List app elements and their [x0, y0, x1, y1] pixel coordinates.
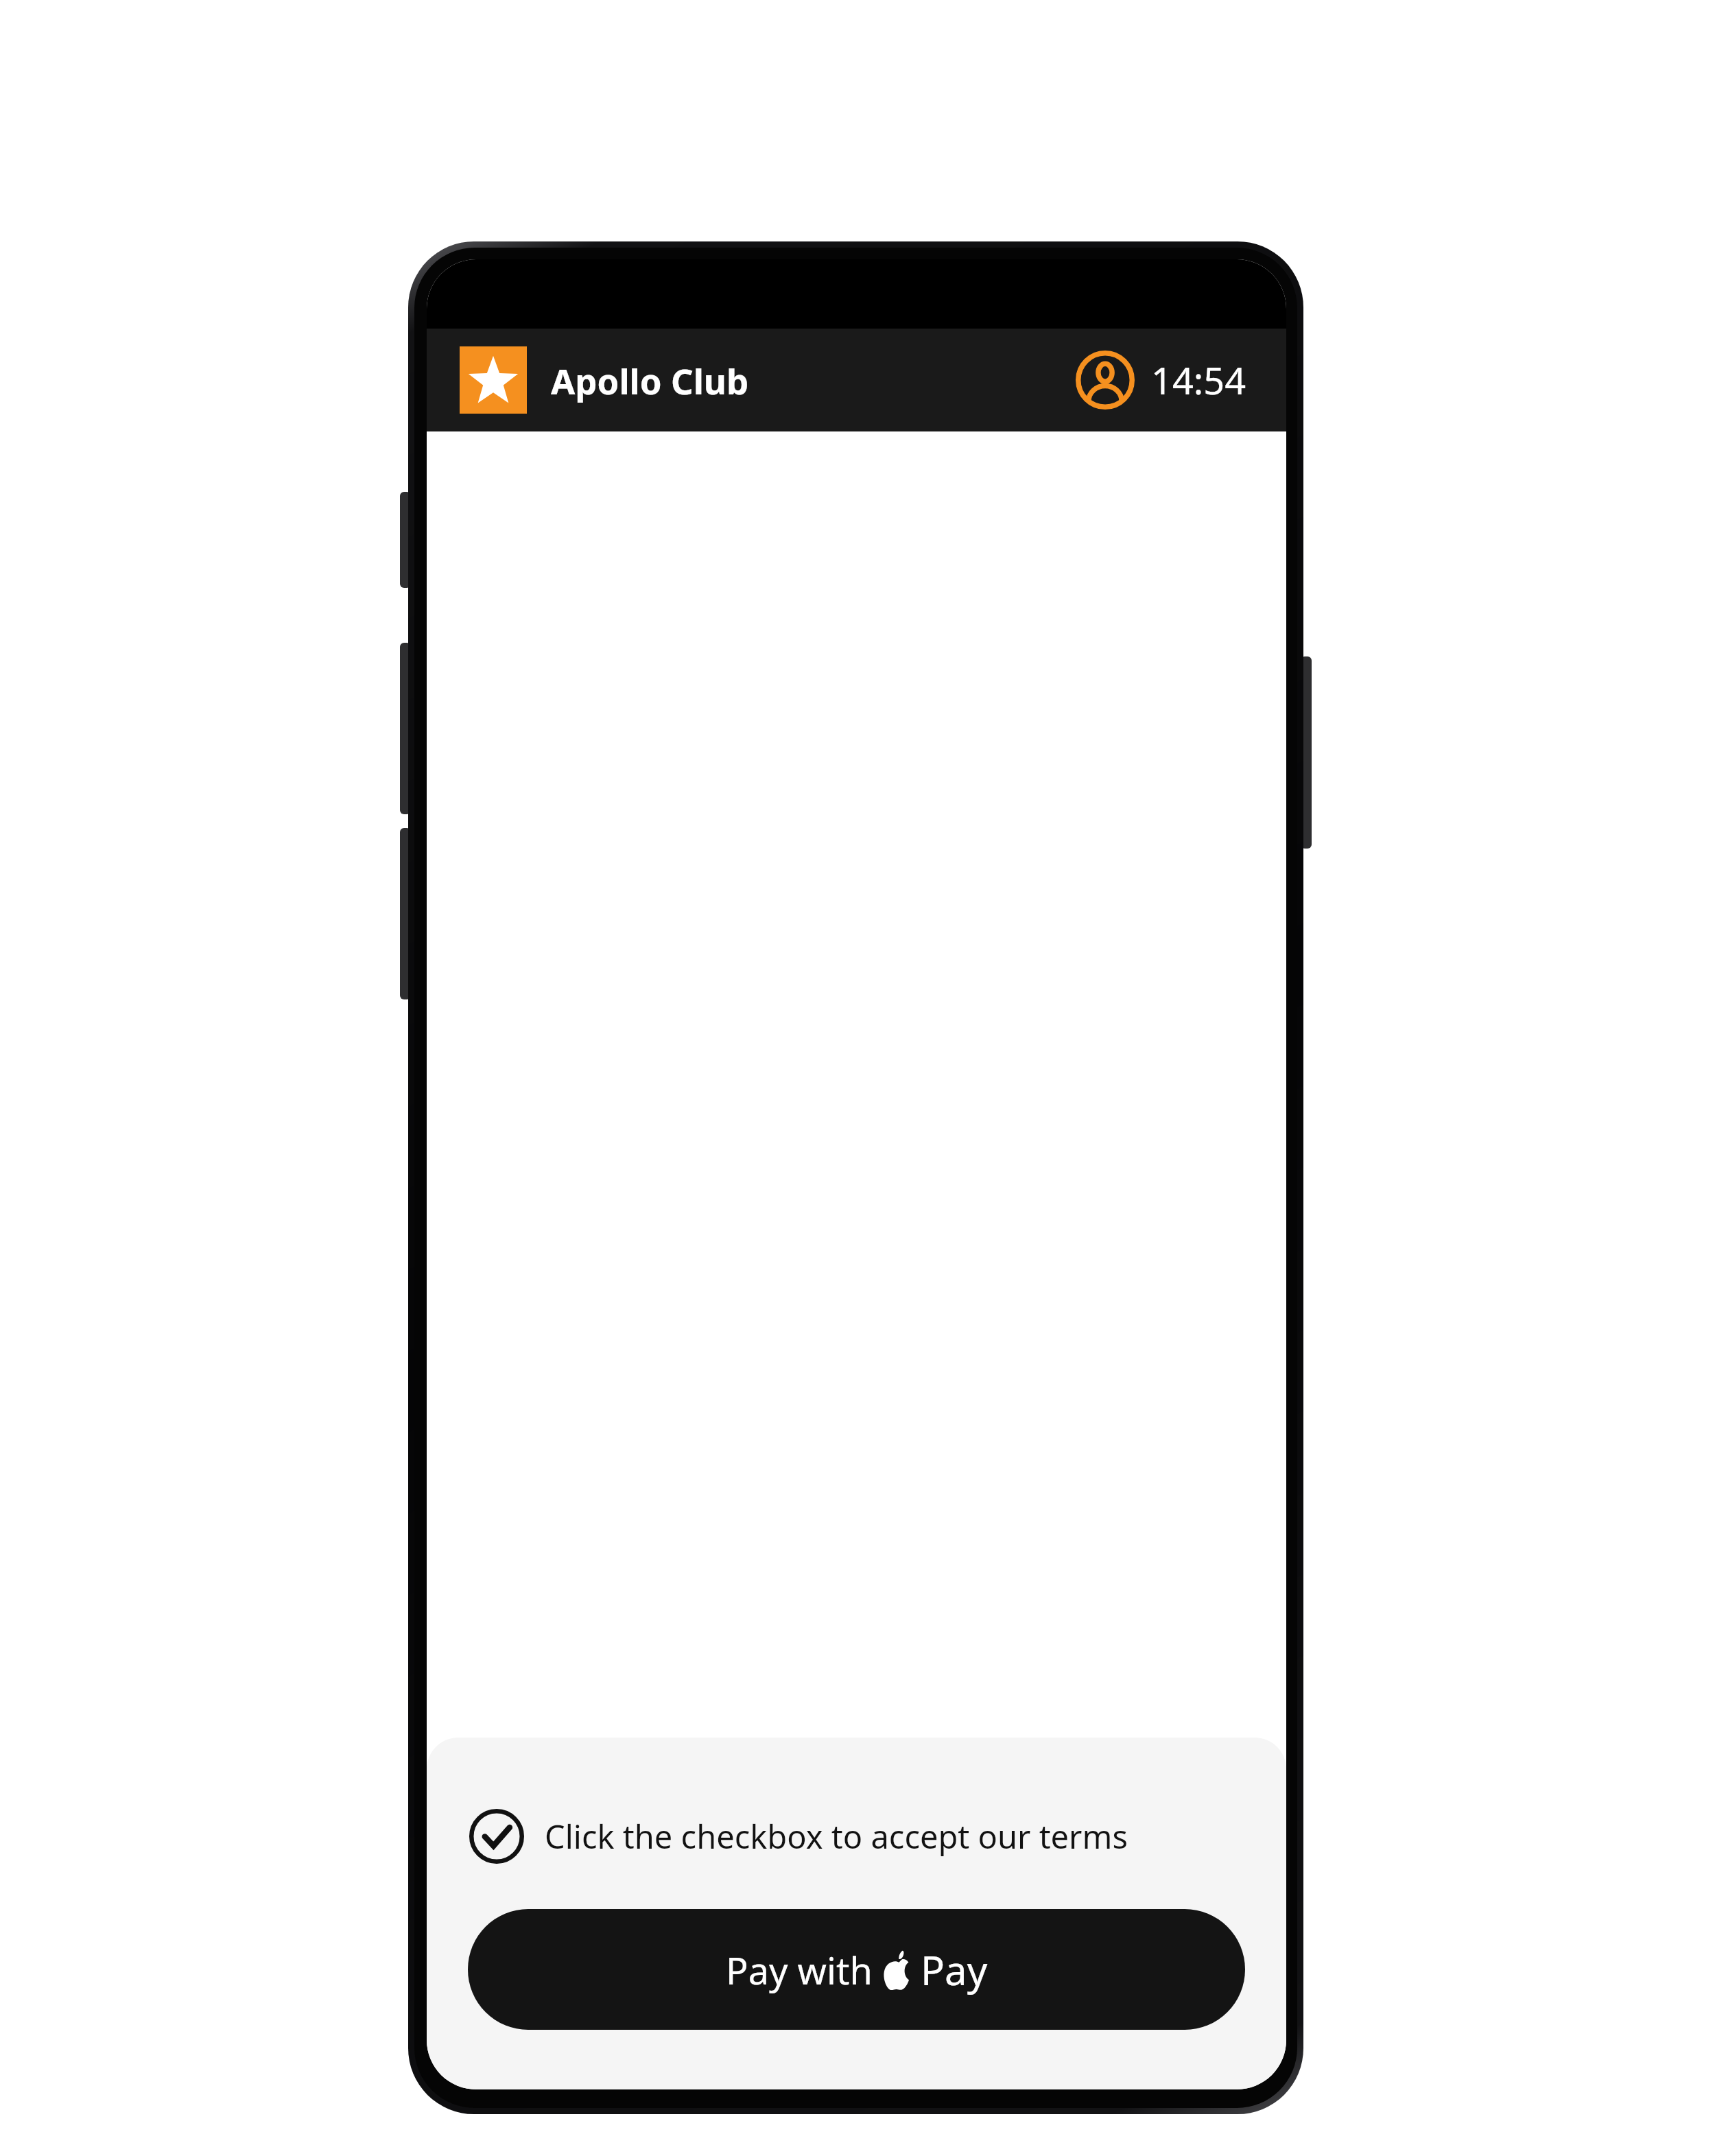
- button[interactable]: Pay with Apple Pay: [468, 1909, 1245, 2030]
- staticText: Pay with: [726, 1945, 882, 1995]
- staticText: Apollo Club: [551, 357, 749, 404]
- button[interactable]: Click the checkbox to accept our terms: [468, 1808, 1245, 1865]
- staticText: Click the checkbox to accept our terms: [545, 1814, 1128, 1858]
- button[interactable]: Account: [1067, 342, 1143, 418]
- button[interactable]: Apollo Club logo: [460, 346, 527, 414]
- staticText: Pay: [921, 1943, 988, 1997]
- staticText: 14:54: [1151, 355, 1246, 405]
